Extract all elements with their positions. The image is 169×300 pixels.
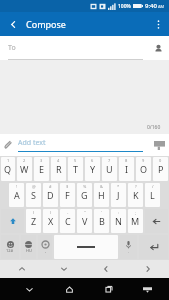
button[interactable]: Left [85,260,127,278]
button[interactable]: A [9,183,24,207]
staticText: $ [66,184,69,189]
staticText: 9 [142,158,145,163]
staticText: J [117,189,120,201]
staticText: 5 [74,158,77,163]
button[interactable]: Z [26,209,41,233]
button[interactable]: Backspace [145,209,168,233]
button[interactable]: C [60,209,75,233]
staticText: ) [50,210,52,215]
button[interactable]: Enter [139,235,168,259]
staticText: D [47,189,54,201]
staticText: ? [135,184,137,189]
button[interactable]: E [34,157,49,181]
button[interactable]: Right [127,260,169,278]
button[interactable]: H [94,183,109,207]
button[interactable]: Hide keyboard [133,278,161,300]
staticText: N [115,215,122,227]
staticText: Add text [18,138,46,148]
staticText: 4 [57,158,60,163]
button[interactable]: Space [54,235,118,259]
staticText: B [99,215,105,227]
button[interactable]: L [145,183,160,207]
staticText: 12# [6,248,14,253]
staticText: T [73,163,79,175]
button[interactable]: Home [55,278,83,300]
staticText: R [56,163,62,175]
staticText: ; [135,210,137,215]
staticText: H [98,189,105,201]
staticText: Q [4,163,12,175]
staticText: W [20,163,29,175]
staticText: I [125,163,129,175]
staticText: Z [31,215,37,227]
button[interactable]: Shift [1,209,24,233]
staticText: - [67,210,69,215]
button[interactable]: Down [43,260,85,278]
staticText: P [158,163,164,175]
staticText: : [118,210,120,215]
staticText: * [117,184,120,189]
staticText: 0/160 [147,124,161,131]
staticText: O [140,163,148,175]
button[interactable]: Voice input [120,235,137,259]
button[interactable]: Q [1,157,15,181]
button[interactable]: O [136,157,151,181]
button[interactable]: I [119,157,134,181]
staticText: 9:40 [145,2,157,10]
button[interactable]: More options [147,12,169,36]
staticText: 8 [125,158,128,163]
button[interactable]: Recents [95,278,123,300]
staticText: To [8,43,16,53]
staticText: ! [16,184,18,189]
button[interactable]: Back [15,278,43,300]
button[interactable]: T [68,157,83,181]
button[interactable]: W [17,157,32,181]
button[interactable]: Pick contact [147,36,169,60]
staticText: 3 [40,158,43,163]
button[interactable]: S [26,183,41,207]
staticText: 2 [23,158,26,163]
button[interactable]: D [43,183,58,207]
button[interactable]: Settings [38,235,52,259]
button[interactable]: P [153,157,168,181]
staticText: # [49,184,52,189]
staticText: Compose [26,18,147,30]
button[interactable]: V [77,209,92,233]
button[interactable]: M [128,209,143,233]
button[interactable]: Attach [0,137,16,153]
staticText: V [82,215,88,227]
button[interactable]: R [51,157,66,181]
button[interactable]: Back [0,12,26,36]
staticText: / [152,184,154,189]
button[interactable]: Language [21,235,36,259]
button[interactable]: K [128,183,143,207]
staticText: A [14,189,20,201]
button[interactable]: G [77,183,92,207]
staticText: G [81,189,88,201]
staticText: E [39,163,45,175]
staticText: 7 [108,158,111,163]
staticText: 0 [159,158,162,163]
button[interactable]: Symbols [1,235,19,259]
button[interactable]: Y [85,157,100,181]
staticText: ( [33,210,35,215]
staticText: S [31,189,36,201]
staticText: AM [158,4,165,9]
button[interactable]: Send [149,135,169,155]
staticText: " [84,210,86,215]
staticText: ' [101,210,102,215]
button[interactable]: Up [0,260,43,278]
staticText: M [131,215,140,227]
button[interactable]: B [94,209,109,233]
button[interactable]: N [111,209,126,233]
staticText: L [150,189,155,201]
staticText: 1 [7,158,10,163]
staticText: , [45,248,47,253]
staticText: U [106,163,113,175]
button[interactable]: X [43,209,58,233]
button[interactable]: U [102,157,117,181]
button[interactable]: J [111,183,126,207]
staticText: 6 [91,158,94,163]
staticText: & [100,184,103,189]
button[interactable]: F [60,183,75,207]
